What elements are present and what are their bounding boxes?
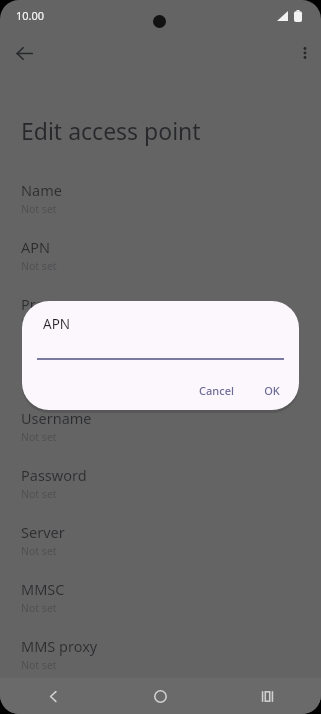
button[interactable]: APN: [0, 233, 321, 290]
button[interactable]: MMS proxy: [0, 632, 321, 689]
button[interactable]: More options: [289, 37, 321, 69]
staticText: Not set: [21, 259, 57, 273]
staticText: APN: [21, 237, 51, 257]
button[interactable]: MMS port: [0, 689, 321, 714]
staticText: Not set: [21, 544, 57, 558]
staticText: OK: [264, 383, 280, 398]
staticText: Not set: [21, 430, 57, 444]
button[interactable]: Back: [0, 678, 107, 714]
button[interactable]: Password: [0, 461, 321, 518]
button[interactable]: Cancel: [188, 377, 245, 404]
button[interactable]: MMSC: [0, 575, 321, 632]
button[interactable]: OK: [253, 377, 291, 404]
button[interactable]: Username: [0, 404, 321, 461]
button[interactable]: Name: [0, 176, 321, 233]
button[interactable]: Recent apps: [214, 678, 321, 714]
staticText: Server: [21, 522, 65, 542]
staticText: MMSC: [21, 579, 65, 599]
staticText: Port: [21, 351, 50, 371]
staticText: 10.00: [16, 8, 45, 23]
staticText: Not set: [21, 316, 57, 330]
staticText: Proxy: [21, 294, 60, 314]
button[interactable]: Home: [107, 678, 214, 714]
staticText: Not set: [21, 487, 57, 501]
button[interactable]: Back: [8, 37, 41, 70]
staticText: Not set: [21, 601, 57, 615]
staticText: APN: [43, 315, 71, 333]
staticText: Not set: [21, 373, 57, 387]
staticText: MMS proxy: [21, 636, 98, 656]
staticText: Not set: [21, 202, 57, 216]
button[interactable]: Proxy: [0, 290, 321, 347]
staticText: Edit access point: [21, 115, 201, 146]
staticText: Password: [21, 465, 87, 485]
staticText: Cancel: [199, 383, 234, 398]
staticText: Name: [21, 180, 62, 200]
staticText: MMS port: [21, 693, 88, 713]
staticText: Username: [21, 408, 92, 428]
button[interactable]: Server: [0, 518, 321, 575]
staticText: Not set: [21, 658, 57, 672]
button[interactable]: Port: [0, 347, 321, 404]
